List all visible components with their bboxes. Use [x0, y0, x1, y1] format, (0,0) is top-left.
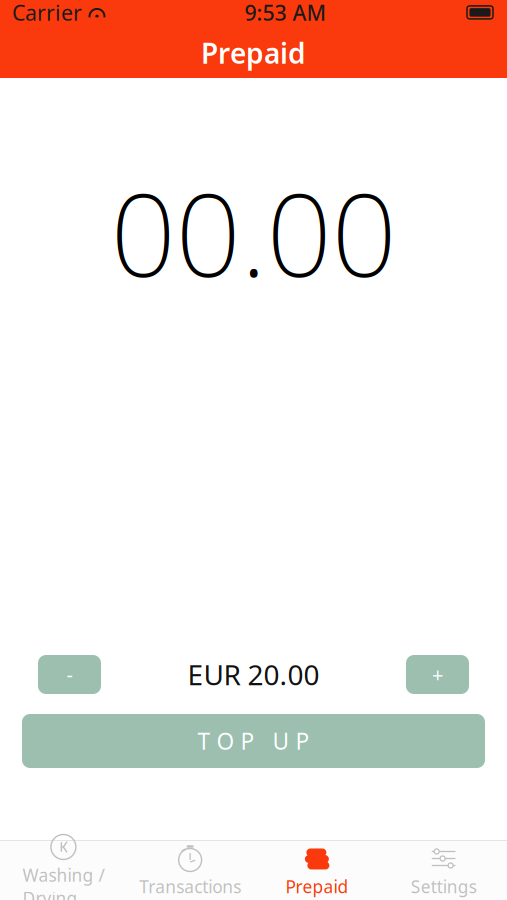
staticText: Transactions: [139, 875, 241, 898]
staticText: 9:53 AM: [244, 0, 326, 26]
button[interactable]: Settings: [380, 839, 507, 900]
button[interactable]: Transactions: [127, 839, 254, 900]
staticText: Prepaid: [285, 875, 348, 898]
staticText: T O P U P: [197, 726, 309, 756]
button[interactable]: -: [38, 655, 101, 694]
button[interactable]: T O P U P: [22, 714, 485, 768]
button[interactable]: Prepaid: [253, 839, 380, 900]
button[interactable]: Washing / Drying: [0, 827, 127, 900]
staticText: EUR 20.00: [187, 656, 319, 693]
staticText: Prepaid: [201, 34, 306, 72]
button[interactable]: +: [406, 655, 469, 694]
staticText: Settings: [411, 875, 477, 898]
staticText: Carrier: [12, 0, 82, 26]
staticText: Washing / Drying: [22, 863, 104, 900]
staticText: -: [66, 661, 72, 688]
staticText: +: [432, 661, 443, 688]
staticText: 00.00: [110, 156, 396, 308]
